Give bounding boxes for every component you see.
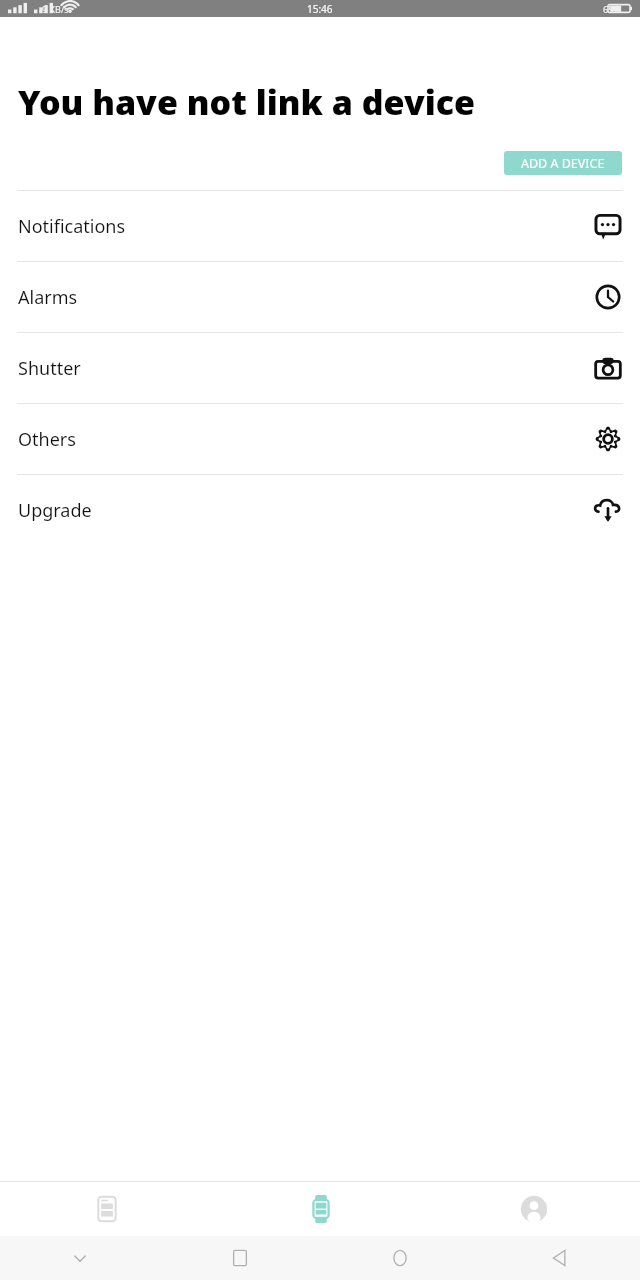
button[interactable]: Hide keyboard (0, 1236, 160, 1280)
button[interactable]: ADD A DEVICE (504, 151, 622, 175)
button[interactable]: Profile (427, 1182, 640, 1236)
button[interactable]: Shutter (0, 333, 640, 403)
button[interactable]: Alarms (0, 262, 640, 332)
staticText: 9 KB/s (42, 3, 69, 15)
button[interactable]: Notifications (0, 191, 640, 261)
button[interactable]: Cards (0, 1182, 214, 1236)
button[interactable]: Others (0, 404, 640, 474)
staticText: Others (18, 427, 76, 452)
staticText: Notifications (18, 214, 126, 239)
button[interactable]: Recents (160, 1236, 320, 1280)
staticText: 65% (603, 3, 621, 15)
button[interactable]: Home (320, 1236, 480, 1280)
staticText: Shutter (18, 356, 81, 381)
button[interactable]: Watch (214, 1182, 427, 1236)
staticText: Alarms (18, 285, 78, 310)
staticText: ADD A DEVICE (521, 155, 605, 172)
staticText: Upgrade (18, 498, 92, 523)
staticText: 15:46 (307, 2, 333, 16)
button[interactable]: Back (480, 1236, 640, 1280)
button[interactable]: Upgrade (0, 475, 640, 545)
staticText: You have not link a device (18, 79, 476, 125)
